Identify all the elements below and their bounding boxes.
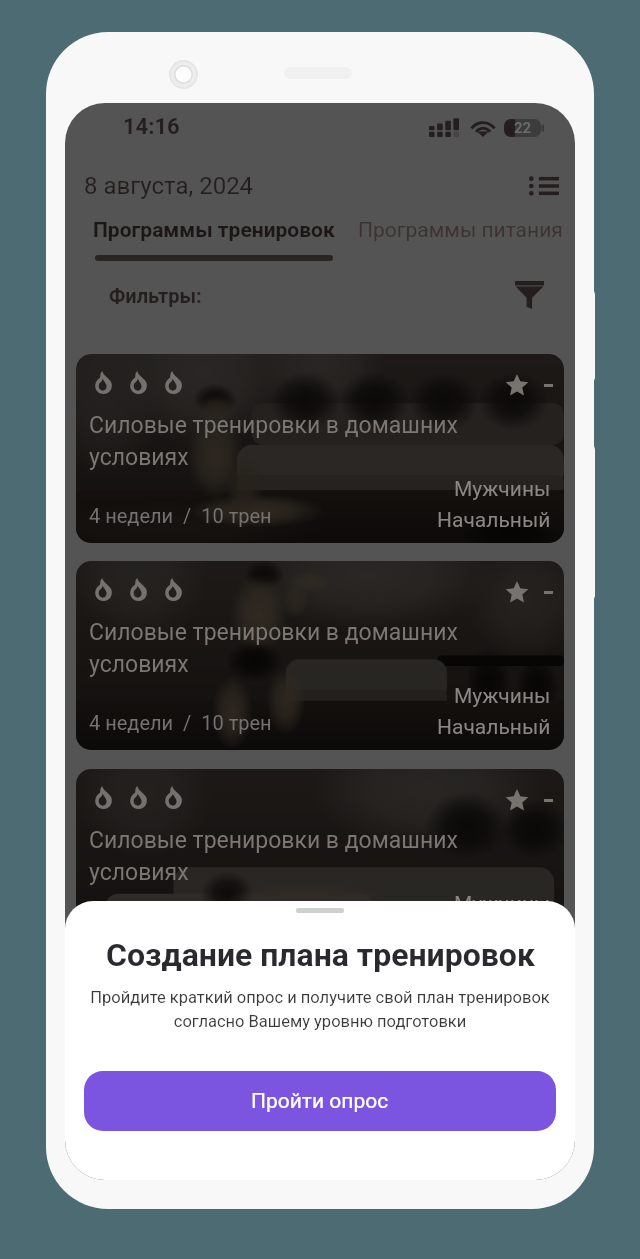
staticText: Пройти опрос xyxy=(251,1089,389,1114)
button[interactable]: Пройти опрос xyxy=(84,1071,556,1131)
staticText: 22 xyxy=(514,119,532,137)
staticText: Программы питания xyxy=(358,218,563,243)
staticText: Силовые тренировки в домашних условиях xyxy=(89,412,479,470)
staticText: 8 августа, 2024 xyxy=(84,172,254,200)
staticText: Мужчины xyxy=(454,477,551,502)
button[interactable]: Программы тренировок xyxy=(93,218,335,243)
button[interactable]: Силовые тренировки в домашних условиях xyxy=(76,561,564,750)
button[interactable]: Filter xyxy=(508,274,550,316)
staticText: Создание плана тренировок xyxy=(106,936,535,974)
staticText: Программы тренировок xyxy=(93,218,335,243)
staticText: Фильтры: xyxy=(109,284,202,307)
staticText: Начальный xyxy=(437,715,551,740)
staticText: Силовые тренировки в домашних условиях xyxy=(89,619,479,677)
staticText: 4 недели / 10 трен xyxy=(89,711,272,734)
button[interactable]: Программы питания xyxy=(358,218,563,243)
staticText: 14:16 xyxy=(123,114,180,140)
staticText: Пройдите краткий опрос и получите свой п… xyxy=(81,988,559,1031)
button[interactable]: Menu list xyxy=(523,165,565,207)
button[interactable]: Силовые тренировки в домашних условиях xyxy=(76,354,564,543)
staticText: 4 недели / 10 трен xyxy=(89,504,272,527)
staticText: Начальный xyxy=(437,508,551,533)
staticText: Мужчины xyxy=(454,892,551,917)
staticText: Силовые тренировки в домашних условиях xyxy=(89,827,479,885)
button[interactable]: Силовые тренировки в домашних условиях xyxy=(76,769,564,958)
staticText: Мужчины xyxy=(454,684,551,709)
